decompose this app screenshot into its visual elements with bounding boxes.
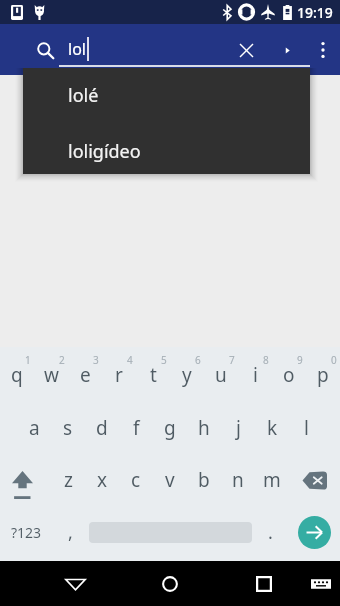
button[interactable]: Search [29,34,61,66]
staticText: 5 [161,353,167,367]
staticText: n [232,467,244,493]
staticText: 2 [59,353,65,367]
button[interactable] [89,506,252,558]
staticText: m [263,467,281,493]
button[interactable]: Clear query [226,30,266,70]
staticText: t [150,362,157,388]
staticText: l [304,415,309,441]
button[interactable]: 6 [170,350,204,402]
staticText: j [236,415,241,441]
button[interactable]: g [153,402,187,454]
staticText: u [215,362,227,388]
staticText: z [64,467,73,493]
staticText: x [97,467,108,493]
staticText: f [133,415,140,441]
button[interactable]: Enter [288,506,340,558]
button[interactable]: j [221,402,255,454]
staticText: ?123 [11,523,42,542]
button[interactable]: 5 [136,350,170,402]
button[interactable]: 4 [102,350,136,402]
button[interactable]: a [17,402,51,454]
button[interactable]: d [85,402,119,454]
button[interactable]: n [221,454,255,506]
staticText: s [63,415,73,441]
staticText: 8 [263,353,269,367]
button[interactable]: More options [305,32,340,68]
staticText: o [283,362,295,388]
button[interactable]: b [187,454,221,506]
button[interactable]: m [255,454,289,506]
button[interactable]: l [289,402,323,454]
button[interactable]: Backspace [289,454,340,506]
button[interactable]: 1 [0,350,34,402]
staticText: v [165,467,175,493]
button[interactable]: 9 [272,350,306,402]
button[interactable]: s [51,402,85,454]
staticText: 4 [127,353,133,367]
staticText: 0 [331,353,337,367]
button[interactable]: k [255,402,289,454]
staticText: w [44,362,59,388]
staticText: 3 [93,353,99,367]
staticText: 9 [297,353,303,367]
button[interactable]: 8 [238,350,272,402]
staticText: b [198,467,210,493]
staticText: h [198,415,210,441]
staticText: a [29,415,40,441]
button[interactable]: f [119,402,153,454]
staticText: k [267,415,278,441]
staticText: loligídeo [68,139,141,164]
button[interactable]: x [85,454,119,506]
staticText: 6 [195,353,201,367]
staticText: d [96,415,108,441]
button[interactable]: h [187,402,221,454]
staticText: p [317,362,329,388]
staticText: q [11,362,23,388]
button[interactable]: z [51,454,85,506]
button[interactable]: 3 [68,350,102,402]
button[interactable]: 7 [204,350,238,402]
staticText: lolé [68,83,99,108]
button[interactable]: Back [51,561,100,606]
button[interactable]: Change keyboard [301,564,340,603]
button[interactable]: v [153,454,187,506]
button[interactable]: Home [145,561,194,606]
button[interactable]: 2 [34,350,68,402]
button[interactable]: Voice search [267,30,307,70]
staticText: g [164,415,176,441]
button[interactable]: ?123 [0,506,52,558]
staticText: lol [68,38,86,60]
button[interactable]: lolé [23,68,310,120]
staticText: 7 [229,353,235,367]
staticText: e [80,362,91,388]
button[interactable]: c [119,454,153,506]
staticText: . [268,520,273,545]
staticText: i [253,362,258,388]
button[interactable]: Recent apps [239,561,288,606]
button[interactable]: , [52,506,89,558]
staticText: c [131,467,141,493]
button[interactable]: . [252,506,288,558]
button[interactable]: loligídeo [23,120,310,174]
button[interactable]: 0 [306,350,340,402]
staticText: 1 [25,353,31,367]
staticText: y [182,362,192,388]
button[interactable]: Shift [0,454,51,506]
staticText: 19:19 [297,3,333,22]
staticText: , [68,520,73,545]
staticText: r [115,362,123,388]
